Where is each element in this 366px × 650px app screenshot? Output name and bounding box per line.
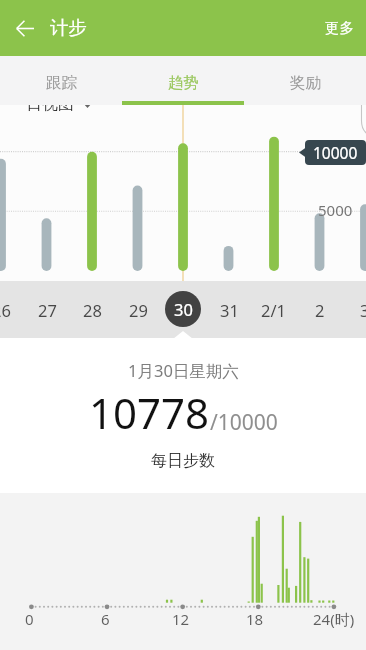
button[interactable]: Back <box>7 11 42 46</box>
staticText: 24(时) <box>313 609 355 629</box>
staticText: 日视图 <box>26 105 74 114</box>
staticText: 10000 <box>313 142 358 163</box>
staticText: 26 <box>0 299 11 321</box>
button[interactable]: 28 <box>68 281 116 338</box>
staticText: 31 <box>220 299 239 321</box>
staticText: 5000 <box>318 200 353 220</box>
staticText: 10778 <box>89 384 210 441</box>
button[interactable]: 奖励 <box>244 56 366 105</box>
button[interactable]: 2 <box>296 281 344 338</box>
button[interactable]: 29 <box>114 281 162 338</box>
staticText: 每日步数 <box>151 451 215 471</box>
staticText: 29 <box>129 299 148 321</box>
staticText: 28 <box>83 299 102 321</box>
button[interactable]: 更多 <box>311 7 366 49</box>
staticText: 12 <box>172 609 190 629</box>
staticText: 1月30日星期六 <box>128 359 239 382</box>
staticText: 30 <box>174 298 193 320</box>
staticText: 6 <box>101 609 110 629</box>
staticText: 趋势 <box>168 73 199 93</box>
staticText: 27 <box>38 299 57 321</box>
button[interactable]: 31 <box>205 281 253 338</box>
staticText: 3 <box>360 299 366 321</box>
staticText: 2 <box>315 299 325 321</box>
button[interactable]: 26 <box>0 281 25 338</box>
button[interactable]: 趋势 <box>122 56 244 105</box>
staticText: /10000 <box>210 408 278 437</box>
button[interactable]: 日视图 <box>26 105 92 114</box>
staticText: 更多 <box>325 19 354 37</box>
staticText: 跟踪 <box>46 73 77 93</box>
staticText: 0 <box>25 609 34 629</box>
button[interactable]: 2/1 <box>250 281 298 338</box>
button[interactable]: 30 <box>165 291 201 327</box>
staticText: 奖励 <box>290 73 321 93</box>
button[interactable]: 3 <box>341 281 366 338</box>
button[interactable]: 27 <box>23 281 71 338</box>
staticText: 2/1 <box>261 299 287 321</box>
staticText: 计步 <box>50 16 87 39</box>
staticText: 18 <box>246 609 264 629</box>
button[interactable]: 跟踪 <box>0 56 122 105</box>
